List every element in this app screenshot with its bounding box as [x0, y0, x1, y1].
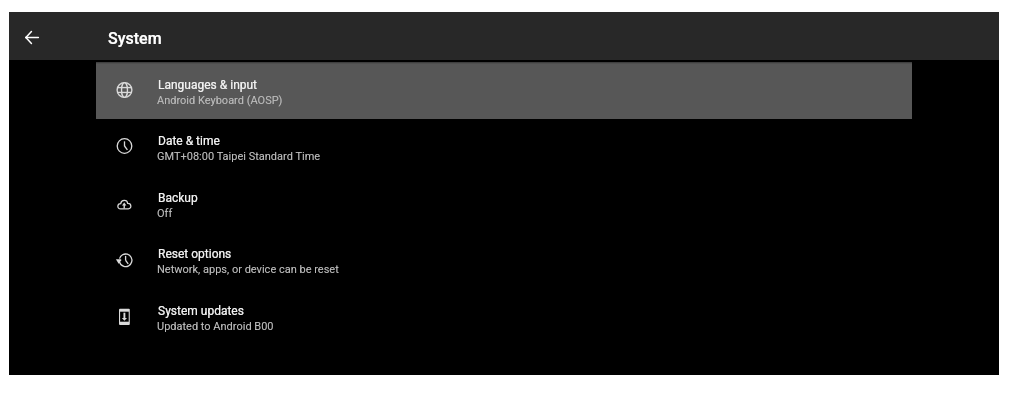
- staticText: Reset options: [158, 247, 232, 261]
- button[interactable]: Backup: [96, 175, 912, 232]
- staticText: System: [108, 29, 162, 48]
- button[interactable]: Languages & input: [96, 62, 912, 119]
- staticText: Backup: [158, 191, 198, 205]
- staticText: Languages & input: [158, 78, 258, 92]
- staticText: GMT+08:00 Taipei Standard Time: [157, 150, 321, 163]
- staticText: Android Keyboard (AOSP): [157, 94, 283, 107]
- button[interactable]: Reset options: [96, 231, 912, 288]
- staticText: Off: [157, 207, 173, 220]
- button[interactable]: Back: [9, 12, 57, 60]
- staticText: System updates: [158, 304, 244, 318]
- button[interactable]: Date & time: [96, 118, 912, 175]
- staticText: Network, apps, or device can be reset: [157, 263, 339, 276]
- button[interactable]: System updates: [96, 288, 912, 345]
- staticText: Updated to Android B00: [157, 320, 274, 333]
- staticText: Date & time: [158, 134, 220, 148]
